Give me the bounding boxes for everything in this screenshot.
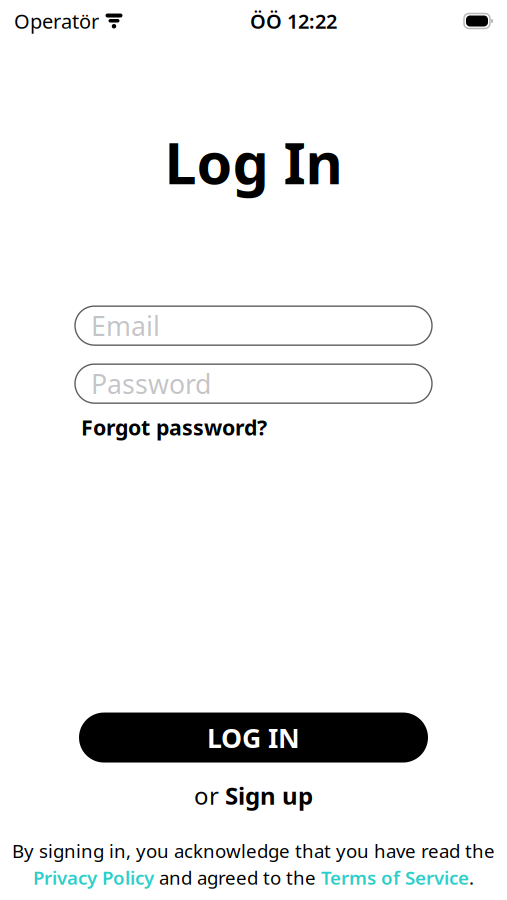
button[interactable]: Terms of Service bbox=[321, 865, 469, 890]
button[interactable]: or bbox=[194, 776, 313, 814]
staticText: By signing in, you acknowledge that you … bbox=[12, 838, 495, 863]
staticText: or bbox=[194, 779, 225, 811]
button[interactable]: Password bbox=[75, 364, 432, 403]
staticText: Sign up bbox=[225, 779, 313, 811]
staticText: Log In bbox=[164, 124, 342, 200]
button[interactable]: LOG IN bbox=[79, 712, 428, 762]
staticText: and agreed to the bbox=[154, 865, 321, 890]
staticText: Operatör bbox=[14, 8, 99, 34]
button[interactable]: Email bbox=[75, 306, 432, 345]
staticText: LOG IN bbox=[207, 720, 300, 755]
staticText: Terms of Service bbox=[321, 865, 469, 890]
staticText: Privacy Policy bbox=[33, 865, 154, 890]
staticText: Email bbox=[91, 308, 160, 343]
button[interactable]: Privacy Policy bbox=[33, 865, 154, 890]
staticText: Password bbox=[91, 366, 211, 401]
staticText: ÖÖ 12:22 bbox=[250, 8, 337, 34]
staticText: . bbox=[469, 865, 474, 890]
staticText: Forgot password? bbox=[81, 413, 267, 441]
button[interactable]: Forgot password? bbox=[81, 409, 267, 445]
